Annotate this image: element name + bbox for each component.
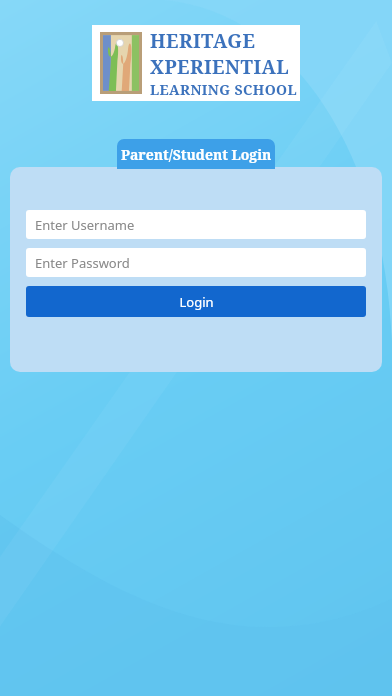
staticText: LEARNING SCHOOL [150, 80, 298, 99]
staticText: Login [179, 293, 214, 311]
staticText: XPERIENTIAL [150, 54, 290, 80]
staticText: Enter Username [35, 216, 135, 234]
button[interactable]: Parent/Student Login [117, 139, 275, 169]
button[interactable]: Enter Username [26, 210, 366, 239]
button[interactable]: Enter Password [26, 248, 366, 277]
other: Heritage Xperiential Learning School [92, 25, 300, 101]
button[interactable]: Login [26, 286, 366, 317]
staticText: HERITAGE [150, 28, 256, 54]
staticText: Enter Password [35, 254, 130, 272]
staticText: Parent/Student Login [121, 145, 272, 164]
